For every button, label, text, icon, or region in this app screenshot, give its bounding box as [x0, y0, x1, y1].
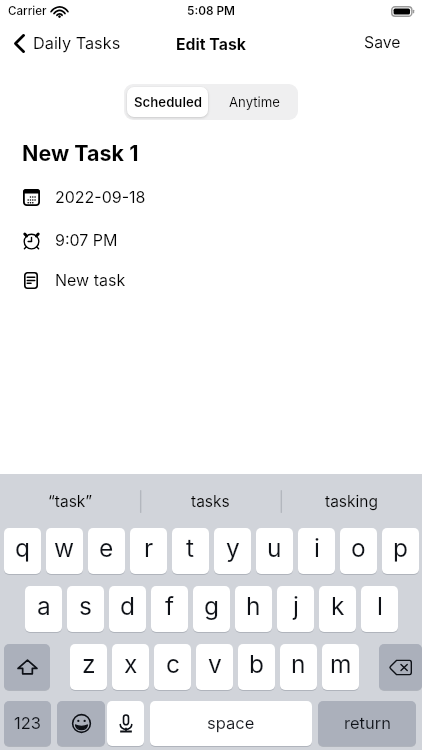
- button[interactable]: Backspace: [379, 644, 422, 690]
- button[interactable]: b: [238, 644, 275, 690]
- button[interactable]: n: [280, 644, 317, 690]
- staticText: y: [226, 533, 240, 563]
- button[interactable]: Save: [352, 28, 422, 57]
- button[interactable]: f: [151, 586, 188, 632]
- staticText: Carrier: [8, 4, 47, 18]
- button[interactable]: Scheduled: [127, 87, 208, 117]
- staticText: Save: [364, 33, 401, 52]
- button[interactable]: w: [46, 528, 83, 574]
- staticText: a: [37, 591, 51, 621]
- staticText: r: [144, 533, 154, 563]
- button[interactable]: c: [154, 644, 191, 690]
- button[interactable]: r: [130, 528, 167, 574]
- button[interactable]: Dictation: [107, 701, 144, 746]
- staticText: l: [377, 591, 383, 621]
- button[interactable]: s: [67, 586, 104, 632]
- button[interactable]: i: [298, 528, 335, 574]
- button[interactable]: y: [214, 528, 251, 574]
- staticText: f: [165, 591, 175, 621]
- button[interactable]: q: [4, 528, 41, 574]
- button[interactable]: space: [150, 701, 312, 746]
- staticText: u: [267, 533, 282, 563]
- staticText: s: [79, 591, 92, 621]
- staticText: g: [204, 591, 220, 621]
- button[interactable]: x: [112, 644, 149, 690]
- staticText: m: [330, 649, 352, 679]
- button[interactable]: a: [25, 586, 62, 632]
- button[interactable]: Daily Tasks: [6, 28, 131, 58]
- button[interactable]: return: [318, 701, 416, 746]
- staticText: space: [207, 713, 255, 733]
- staticText: q: [15, 533, 31, 563]
- staticText: return: [344, 713, 391, 733]
- staticText: i: [314, 533, 320, 563]
- staticText: Edit Task: [176, 35, 246, 54]
- staticText: o: [351, 533, 366, 563]
- staticText: New Task 1: [22, 140, 139, 166]
- staticText: j: [293, 591, 299, 621]
- button[interactable]: g: [193, 586, 230, 632]
- staticText: v: [208, 649, 222, 679]
- button[interactable]: k: [319, 586, 356, 632]
- button[interactable]: Shift: [4, 644, 50, 690]
- staticText: e: [99, 533, 114, 563]
- staticText: p: [393, 533, 409, 563]
- staticText: x: [124, 649, 138, 679]
- button[interactable]: “task”: [0, 474, 140, 528]
- staticText: t: [186, 533, 195, 563]
- button[interactable]: v: [196, 644, 233, 690]
- button[interactable]: h: [235, 586, 272, 632]
- button[interactable]: l: [361, 586, 398, 632]
- staticText: w: [54, 533, 75, 563]
- button[interactable]: t: [172, 528, 209, 574]
- staticText: b: [249, 649, 265, 679]
- button[interactable]: z: [70, 644, 107, 690]
- button[interactable]: Emoji keyboard: [57, 701, 105, 746]
- staticText: Scheduled: [134, 94, 202, 110]
- staticText: Anytime: [229, 94, 281, 110]
- button[interactable]: p: [382, 528, 419, 574]
- staticText: 123: [14, 713, 41, 733]
- staticText: n: [291, 649, 306, 679]
- button[interactable]: j: [277, 586, 314, 632]
- button[interactable]: Anytime: [211, 84, 298, 120]
- staticText: 2022-09-18: [55, 187, 146, 206]
- staticText: tasks: [191, 492, 230, 511]
- button[interactable]: tasking: [281, 474, 422, 528]
- staticText: “task”: [48, 492, 93, 511]
- button[interactable]: e: [88, 528, 125, 574]
- button[interactable]: m: [322, 644, 359, 690]
- staticText: k: [331, 591, 345, 621]
- button[interactable]: tasks: [140, 474, 281, 528]
- button[interactable]: d: [109, 586, 146, 632]
- button[interactable]: u: [256, 528, 293, 574]
- staticText: tasking: [325, 492, 378, 511]
- staticText: New task: [55, 270, 126, 289]
- button[interactable]: 123: [4, 701, 51, 746]
- staticText: c: [166, 649, 180, 679]
- staticText: z: [82, 649, 96, 679]
- button[interactable]: o: [340, 528, 377, 574]
- staticText: h: [246, 591, 261, 621]
- staticText: 5:08 PM: [187, 4, 235, 18]
- staticText: 9:07 PM: [55, 230, 118, 249]
- staticText: d: [120, 591, 136, 621]
- staticText: Daily Tasks: [33, 33, 121, 53]
